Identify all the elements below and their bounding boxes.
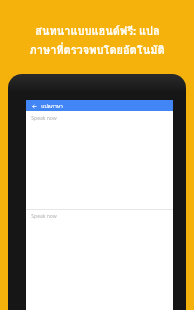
staticText: สนทนาแบบแฮนด์ฟรี: แปล <box>35 22 160 39</box>
staticText: Speak now <box>31 213 57 220</box>
button[interactable]: Back <box>30 102 38 110</box>
button[interactable]: Back <box>26 100 173 111</box>
staticText: แปลภาษา <box>41 102 63 110</box>
staticText: ภาษาที่ตรวจพบโดยอัตโนมัติ <box>29 41 165 58</box>
staticText: Speak now <box>31 115 57 122</box>
